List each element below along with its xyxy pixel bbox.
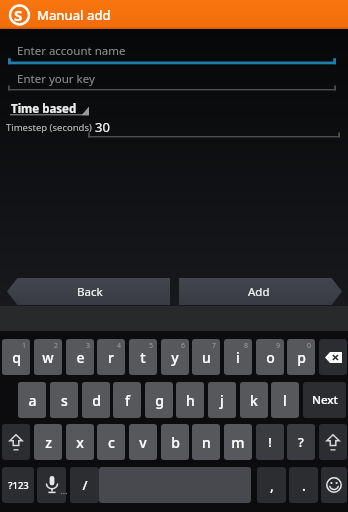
staticText: Enter account name — [17, 43, 126, 59]
staticText: Timestep (seconds) — [6, 121, 92, 134]
staticText: S — [14, 5, 23, 25]
staticText: i — [236, 348, 240, 367]
staticText: 0 — [307, 341, 312, 351]
staticText: Manual add — [37, 6, 111, 24]
staticText: Enter your key — [17, 71, 95, 87]
staticText: Next — [312, 392, 338, 408]
staticText: 8 — [244, 341, 249, 351]
staticText: c — [108, 433, 115, 452]
staticText: 4 — [117, 341, 122, 351]
staticText: e — [76, 348, 85, 367]
staticText: p — [297, 348, 306, 367]
staticText: 9 — [276, 341, 281, 351]
staticText: m — [231, 433, 245, 452]
staticText: ? — [298, 433, 304, 451]
staticText: 6 — [181, 341, 186, 351]
staticText: 3 — [86, 341, 91, 351]
staticText: s — [61, 391, 68, 410]
staticText: z — [45, 433, 52, 452]
staticText: ! — [268, 433, 272, 451]
staticText: ?123 — [8, 479, 29, 492]
staticText: u — [202, 348, 211, 367]
staticText: n — [202, 433, 211, 452]
staticText: y — [171, 348, 179, 367]
staticText: 30 — [95, 118, 110, 136]
staticText: Add — [248, 284, 270, 300]
staticText: 5 — [149, 341, 154, 351]
staticText: 2 — [54, 341, 59, 351]
staticText: j — [220, 391, 224, 410]
staticText: f — [125, 391, 130, 410]
staticText: / — [82, 476, 88, 494]
staticText: t — [140, 348, 146, 367]
staticText: 7 — [212, 341, 217, 351]
staticText: , — [270, 476, 274, 495]
staticText: k — [250, 391, 258, 410]
staticText: . — [302, 476, 306, 495]
staticText: 1 — [22, 341, 27, 351]
staticText: v — [139, 433, 147, 452]
staticText: q — [12, 348, 21, 367]
staticText: l — [283, 391, 287, 410]
staticText: a — [28, 391, 37, 410]
staticText: o — [266, 348, 275, 367]
staticText: r — [108, 348, 114, 367]
staticText: w — [42, 348, 54, 367]
staticText: Time based — [11, 101, 77, 117]
staticText: x — [76, 433, 84, 452]
staticText: b — [171, 433, 180, 452]
staticText: h — [186, 391, 195, 410]
staticText: d — [92, 391, 101, 410]
staticText: Back — [77, 284, 103, 300]
staticText: g — [155, 391, 164, 410]
